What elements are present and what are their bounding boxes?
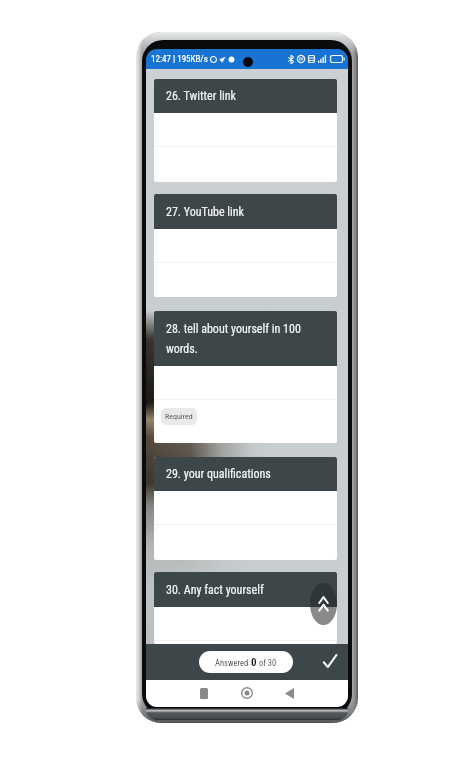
- button[interactable]: 27. YouTube link: [154, 194, 337, 297]
- staticText: 26. Twitter link: [166, 89, 236, 103]
- button[interactable]: 29. your qualifications: [154, 457, 337, 560]
- staticText: Answered: [215, 658, 251, 668]
- staticText: 0: [251, 656, 257, 669]
- button[interactable]: 26. Twitter link: [154, 79, 337, 182]
- button[interactable]: Home: [236, 682, 258, 704]
- button[interactable]: Required: [161, 408, 197, 425]
- button[interactable]: Recent apps: [193, 682, 215, 704]
- button[interactable]: 28. tell about yourself in 100 words.: [154, 311, 337, 443]
- staticText: 30. Any fact yourself: [166, 583, 264, 597]
- staticText: 12:47 | 195KB/s: [151, 54, 208, 65]
- button[interactable]: Submit: [317, 648, 343, 674]
- staticText: 28. tell about yourself in 100 words.: [166, 322, 327, 356]
- button[interactable]: 30. Any fact yourself: [154, 572, 337, 644]
- button[interactable]: Answered: [199, 651, 293, 673]
- staticText: Required: [165, 412, 193, 421]
- staticText: of 30: [257, 658, 277, 668]
- button[interactable]: Back: [278, 682, 300, 704]
- button[interactable]: Scroll to top: [310, 583, 337, 625]
- staticText: 27. YouTube link: [166, 205, 245, 219]
- staticText: 29. your qualifications: [166, 467, 271, 481]
